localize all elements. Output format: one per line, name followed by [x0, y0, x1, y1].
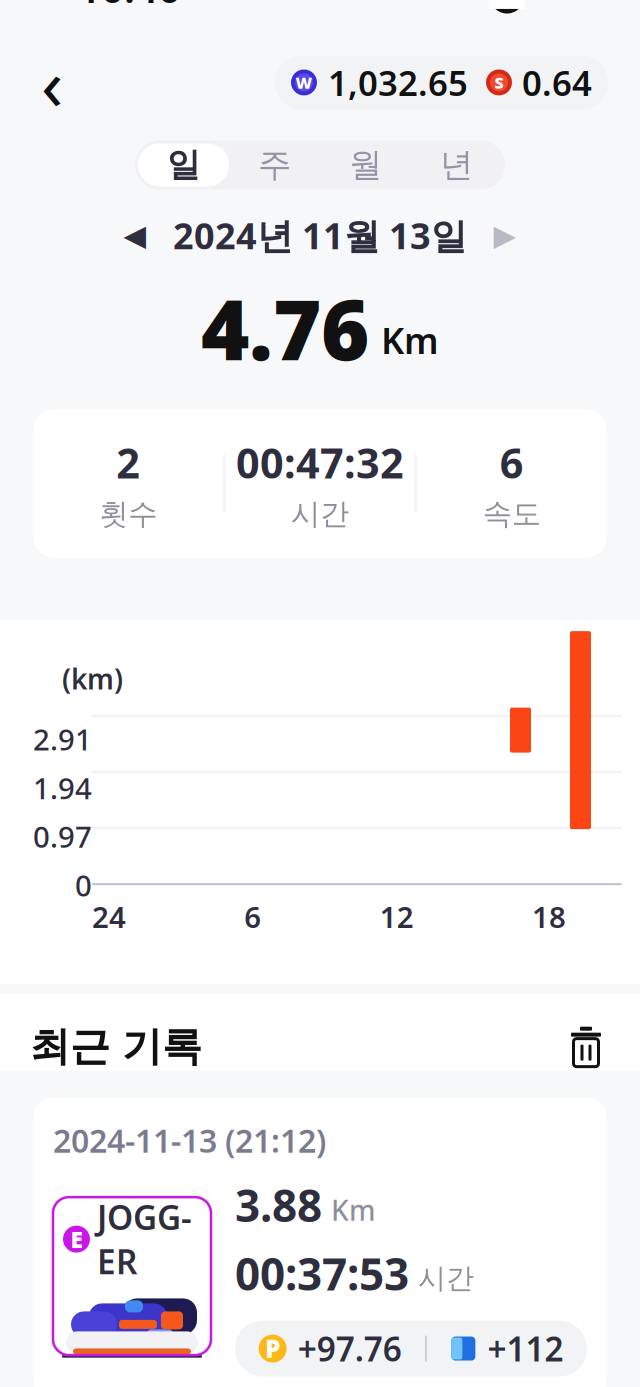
button[interactable]: 2024-11-13 (21:12) [33, 1097, 607, 1387]
staticText: 6 [244, 897, 261, 936]
staticText: +97.76 [298, 1326, 402, 1371]
button[interactable]: 월 [320, 143, 411, 186]
staticText: 2024년 11월 13일 [173, 211, 467, 259]
staticText: 18 [532, 897, 566, 936]
staticText: 1,032.65 [328, 59, 468, 105]
staticText: JOGGER [97, 1195, 192, 1283]
staticText: 주 [258, 144, 291, 185]
staticText: Km [331, 1191, 376, 1228]
button[interactable]: 주 [229, 143, 320, 186]
staticText: 년 [440, 144, 473, 185]
button[interactable]: Back [24, 54, 80, 110]
staticText: 속도 [483, 496, 541, 532]
staticText: ‹ [41, 35, 63, 130]
button[interactable]: W [275, 55, 608, 109]
staticText: E [70, 1224, 82, 1254]
staticText: Km [381, 316, 439, 364]
button[interactable]: 년 [411, 143, 502, 186]
staticText: 월 [349, 144, 382, 185]
staticText: P [265, 1333, 280, 1364]
button[interactable]: Delete records [562, 1023, 610, 1071]
staticText: 1.94 [33, 768, 92, 807]
staticText: +112 [487, 1326, 563, 1371]
staticText: W [295, 72, 312, 93]
staticText: 시간 [291, 496, 349, 532]
staticText: 최근 기록 [30, 1022, 202, 1071]
staticText: 24 [92, 897, 126, 936]
staticText: S [494, 72, 503, 93]
staticText: (km) [62, 660, 123, 697]
staticText: 00:37:53 [235, 1244, 409, 1302]
staticText: 일 [167, 144, 200, 185]
staticText: 10:40 [78, 0, 181, 14]
staticText: 0 [75, 866, 92, 905]
button[interactable]: Previous day [113, 213, 157, 257]
staticText: 3.88 [235, 1176, 322, 1234]
staticText: 0.97 [33, 817, 92, 856]
staticText: 6 [500, 435, 524, 490]
staticText: 0.64 [522, 59, 592, 105]
staticText: 2 [116, 435, 140, 490]
staticText: 2024-11-13 (21:12) [53, 1119, 326, 1162]
button[interactable]: Next day [483, 213, 527, 257]
staticText: 횟수 [99, 496, 157, 532]
staticText: 4.76 [201, 273, 369, 383]
staticText: ▶ [493, 219, 516, 252]
staticText: 00:47:32 [236, 435, 404, 490]
staticText: 2.91 [33, 720, 92, 759]
staticText: ◀ [123, 219, 146, 252]
staticText: 시간 [418, 1261, 474, 1296]
button[interactable]: 일 [138, 143, 229, 186]
staticText: 12 [380, 897, 414, 936]
